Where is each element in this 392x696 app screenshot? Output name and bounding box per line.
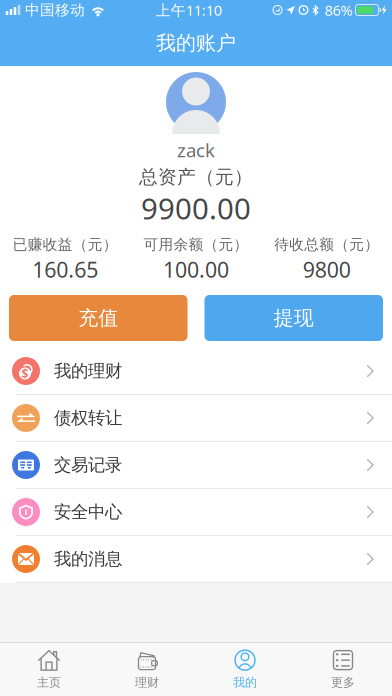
- staticText: 充值: [78, 306, 118, 330]
- staticText: zack: [177, 138, 215, 162]
- button[interactable]: 我的消息: [0, 536, 392, 583]
- staticText: 我的账户: [156, 31, 236, 55]
- staticText: 160.65: [32, 255, 98, 284]
- button[interactable]: $: [0, 348, 392, 395]
- button[interactable]: 更多: [294, 643, 392, 696]
- staticText: $: [21, 365, 28, 381]
- button[interactable]: 理财: [98, 643, 196, 696]
- staticText: 更多: [331, 675, 355, 690]
- staticText: 我的: [233, 675, 257, 690]
- staticText: 我的理财: [54, 360, 122, 382]
- staticText: 总资产（元）: [139, 165, 253, 188]
- staticText: 安全中心: [54, 501, 122, 523]
- staticText: 上午11:10: [156, 0, 222, 20]
- staticText: 交易记录: [54, 454, 122, 476]
- button[interactable]: 债权转让: [0, 395, 392, 442]
- staticText: 9800: [303, 255, 351, 284]
- button[interactable]: 我的: [196, 643, 294, 696]
- staticText: 已赚收益（元）: [13, 235, 118, 253]
- staticText: 我的消息: [54, 548, 122, 570]
- staticText: 主页: [37, 675, 61, 690]
- button[interactable]: 交易记录: [0, 442, 392, 489]
- button[interactable]: 提现: [204, 295, 383, 341]
- button[interactable]: 充值: [9, 295, 187, 341]
- staticText: 86%: [324, 0, 352, 20]
- button[interactable]: 主页: [0, 643, 98, 696]
- staticText: 待收总额（元）: [274, 235, 379, 253]
- staticText: 100.00: [163, 255, 229, 284]
- staticText: 提现: [274, 306, 314, 330]
- button[interactable]: 安全中心: [0, 489, 392, 536]
- staticText: 债权转让: [54, 407, 122, 429]
- staticText: 中国移动: [25, 1, 85, 19]
- staticText: 可用余额（元）: [143, 235, 248, 253]
- staticText: 9900.00: [141, 188, 251, 227]
- staticText: 理财: [135, 675, 159, 690]
